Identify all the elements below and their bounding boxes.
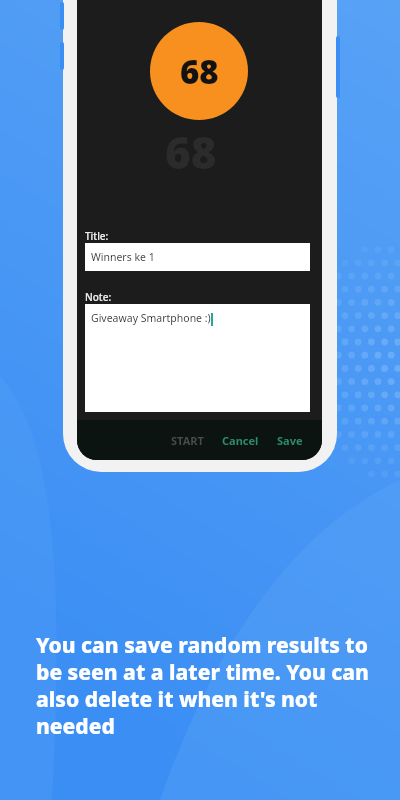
staticText: You can save random results to be seen a… (36, 631, 376, 740)
staticText: Save (277, 433, 303, 448)
button[interactable]: 68 (150, 22, 248, 120)
staticText: Giveaway Smartphone :) (91, 311, 211, 325)
staticText: Note: (85, 290, 112, 304)
staticText: Title: (85, 229, 109, 243)
button[interactable]: Giveaway Smartphone :) (85, 304, 310, 412)
staticText: Winners ke 1 (91, 250, 155, 264)
button[interactable]: START (162, 428, 213, 453)
button[interactable]: Cancel (213, 428, 268, 453)
staticText: 68 (165, 122, 217, 182)
button[interactable]: Save (268, 428, 312, 453)
staticText: 68 (180, 49, 219, 94)
button[interactable]: Winners ke 1 (85, 243, 310, 271)
other: Volume up (60, 2, 64, 30)
other: Power (336, 36, 340, 98)
staticText: START (171, 433, 204, 448)
other: Volume down (60, 42, 64, 70)
staticText: Cancel (222, 433, 259, 448)
